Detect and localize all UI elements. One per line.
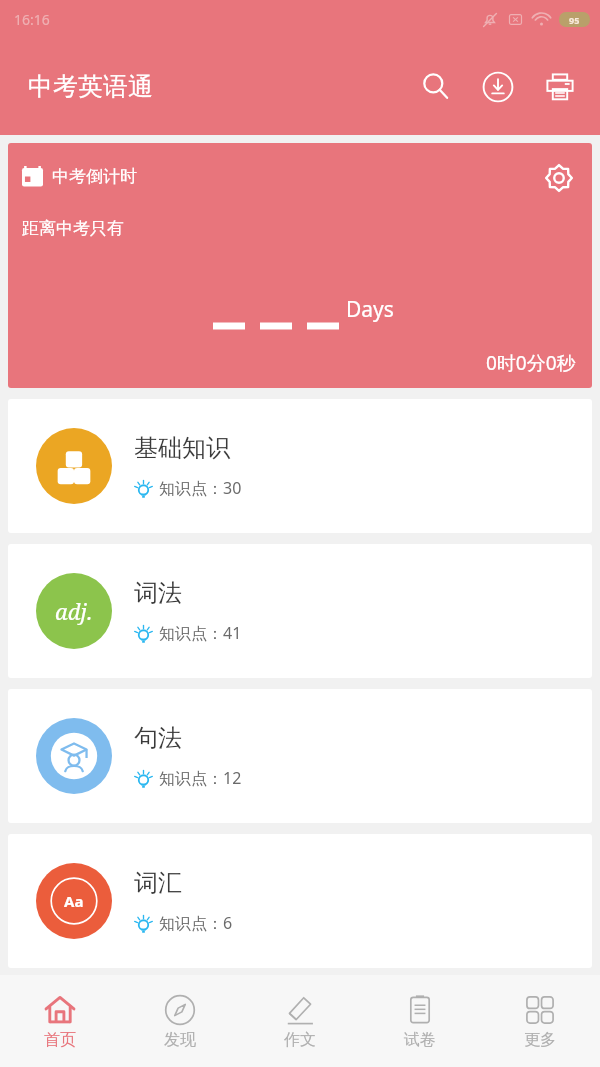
button[interactable]: Settings	[536, 155, 582, 201]
button[interactable]: 试卷	[360, 975, 480, 1067]
button[interactable]: 更多	[480, 975, 600, 1067]
staticText: 作文	[284, 1030, 316, 1050]
staticText: adj.	[55, 596, 93, 626]
staticText: 知识点：30	[159, 477, 242, 499]
staticText: 95	[569, 14, 580, 26]
staticText: 句法	[134, 723, 182, 753]
staticText: 中考英语通	[28, 71, 153, 102]
staticText: 基础知识	[134, 433, 230, 463]
staticText: 知识点：6	[159, 912, 233, 934]
button[interactable]: 中考倒计时	[8, 143, 592, 388]
staticText: 中考倒计时	[52, 166, 137, 187]
staticText: 词法	[134, 578, 182, 608]
staticText: 0时0分0秒	[486, 350, 576, 376]
staticText: 知识点：41	[159, 622, 242, 644]
button[interactable]: 首页	[0, 975, 120, 1067]
staticText: 知识点：12	[159, 767, 242, 789]
staticText: 距离中考只有	[22, 218, 124, 239]
button[interactable]: 作文	[240, 975, 360, 1067]
button[interactable]: adj.	[8, 544, 592, 678]
staticText: 16:16	[14, 10, 50, 29]
button[interactable]: Search	[412, 63, 460, 111]
staticText: 更多	[524, 1030, 556, 1050]
button[interactable]: Aa	[8, 834, 592, 968]
staticText: 发现	[164, 1030, 196, 1050]
button[interactable]: 句法	[8, 689, 592, 823]
staticText: Days	[346, 295, 394, 324]
staticText: 试卷	[404, 1030, 436, 1050]
staticText: 词汇	[134, 868, 182, 898]
staticText: Aa	[64, 891, 84, 911]
button[interactable]: Print	[536, 63, 584, 111]
staticText: 首页	[44, 1030, 76, 1050]
button[interactable]: 基础知识	[8, 399, 592, 533]
button[interactable]: Download	[474, 63, 522, 111]
button[interactable]: 发现	[120, 975, 240, 1067]
